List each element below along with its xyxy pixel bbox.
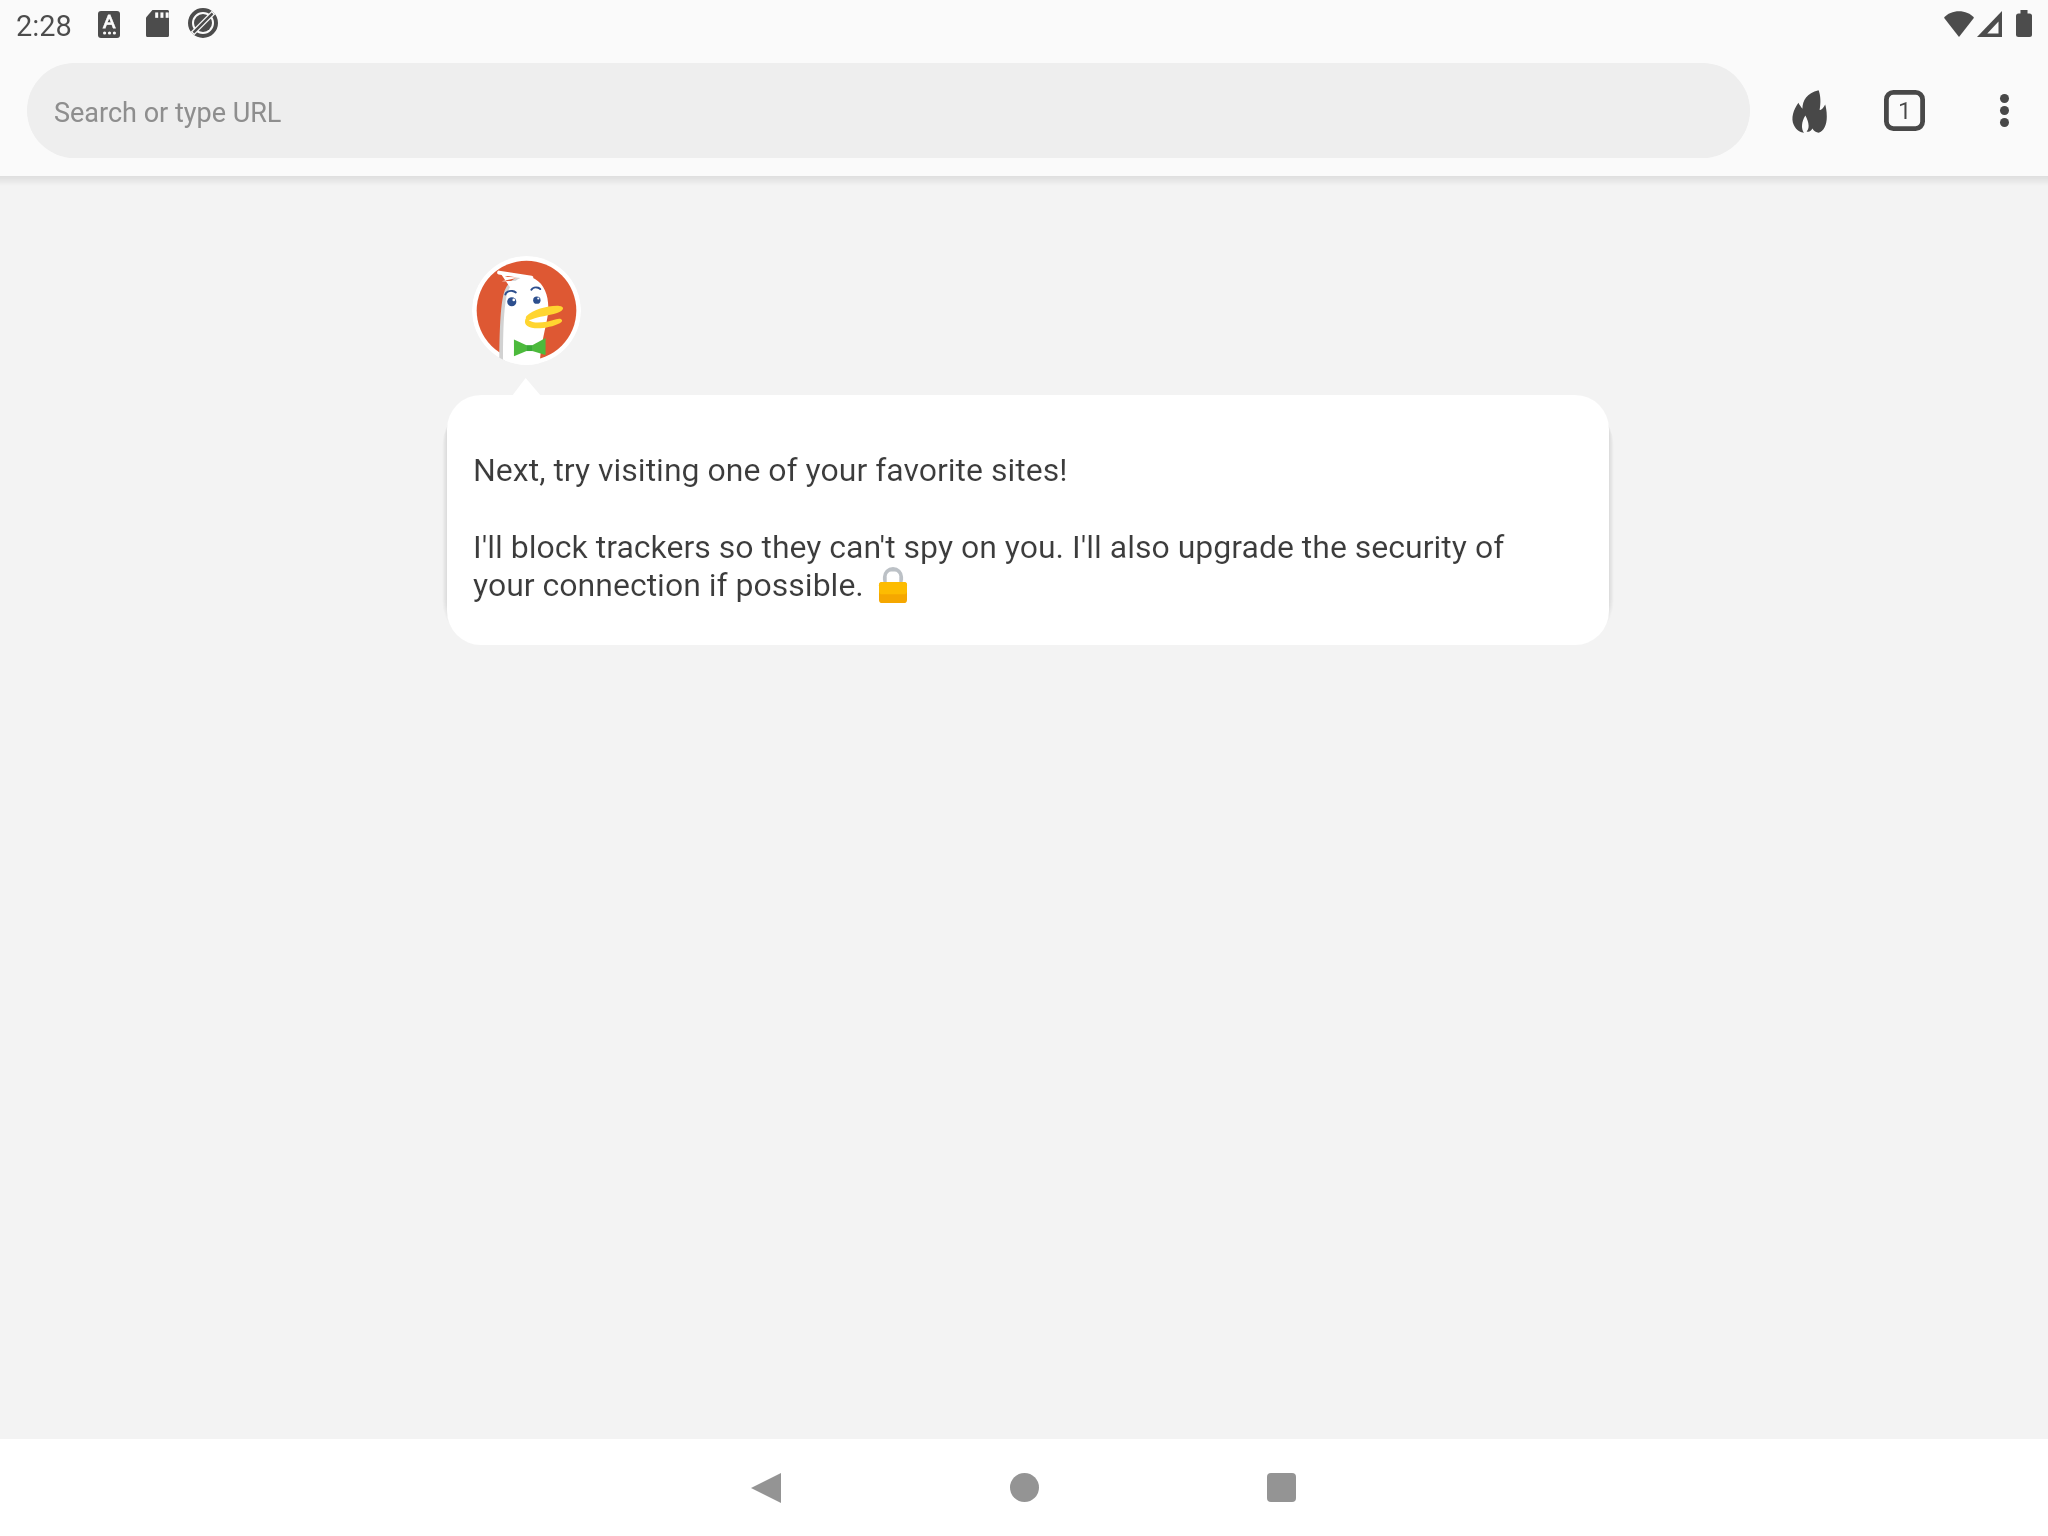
button[interactable]: Home	[974, 1439, 1074, 1536]
staticText: 1	[1898, 97, 1912, 125]
staticText: I'll block trackers so they can't spy on…	[473, 528, 1505, 566]
button[interactable]: More options	[1956, 63, 2048, 158]
button[interactable]: Fire Button	[1761, 63, 1857, 158]
staticText: 2:28	[16, 9, 72, 43]
staticText: A	[103, 10, 116, 32]
button[interactable]: Back	[716, 1439, 816, 1536]
staticText: Search or type URL	[54, 97, 282, 129]
staticText: Next, try visiting one of your favorite …	[473, 451, 1068, 489]
button[interactable]: Tabs	[1856, 63, 1952, 158]
button[interactable]: Recents	[1231, 1439, 1331, 1536]
button[interactable]: Search or type URL	[27, 63, 1750, 158]
staticText: your connection if possible.	[473, 566, 872, 604]
